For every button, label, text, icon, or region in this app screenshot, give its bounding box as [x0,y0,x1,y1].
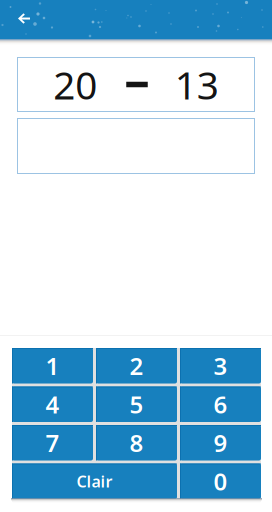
staticText: 9 [213,427,227,459]
button[interactable]: 4 [12,386,93,422]
button[interactable]: 3 [180,348,261,383]
staticText: 0 [213,465,227,497]
button[interactable]: 8 [96,425,177,460]
button[interactable]: Back [0,0,48,37]
staticText: 13 [175,59,219,110]
button[interactable]: 5 [96,386,177,422]
staticText: 7 [45,427,59,459]
staticText: 8 [129,427,143,459]
staticText: 6 [213,388,227,420]
button[interactable]: 7 [12,425,93,460]
staticText: 5 [129,388,143,420]
staticText: 1 [45,350,59,382]
button[interactable]: Clair [12,463,177,499]
staticText: 4 [45,388,59,420]
button[interactable]: 2 [96,348,177,383]
staticText: 2 [129,350,143,382]
button[interactable]: 0 [180,463,261,499]
button[interactable]: 6 [180,386,261,422]
button[interactable]: 9 [180,425,261,460]
button[interactable]: 1 [12,348,93,383]
staticText: 3 [213,350,227,382]
staticText: 20 [53,59,97,110]
staticText: Clair [76,471,112,492]
